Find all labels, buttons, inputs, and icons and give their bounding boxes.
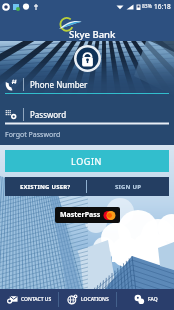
button[interactable]: FAQ: [117, 289, 174, 310]
staticText: FAQ: [148, 296, 158, 303]
staticText: SIGN UP: [115, 183, 142, 191]
button[interactable]: Password: [5, 106, 169, 126]
staticText: Forgot Password: [5, 130, 61, 140]
button[interactable]: EXISTING USER?: [5, 177, 86, 196]
staticText: Password: [30, 109, 67, 120]
staticText: LOGIN: [71, 155, 103, 167]
other: Contact us: [7, 294, 18, 305]
staticText: 16:18: [154, 2, 171, 11]
staticText: 83%: [142, 3, 152, 10]
button[interactable]: MasterPass: [60, 210, 116, 220]
button[interactable]: Forgot Password: [5, 130, 61, 140]
button[interactable]: SIGN UP: [87, 177, 169, 196]
staticText: LOCATIONS: [81, 296, 109, 303]
button[interactable]: Contact us: [0, 289, 58, 310]
staticText: Skye Bank: [69, 28, 116, 41]
other: Locations: [67, 294, 78, 305]
other: FAQ: [134, 294, 145, 305]
staticText: MasterPass: [60, 210, 101, 220]
staticText: Phone Number: [30, 79, 88, 90]
staticText: CONTACT US: [21, 296, 52, 303]
button[interactable]: LOGIN: [5, 150, 169, 172]
button[interactable]: Phone Number: [5, 76, 169, 96]
staticText: EXISTING USER?: [20, 183, 71, 191]
button[interactable]: Locations: [59, 289, 116, 310]
